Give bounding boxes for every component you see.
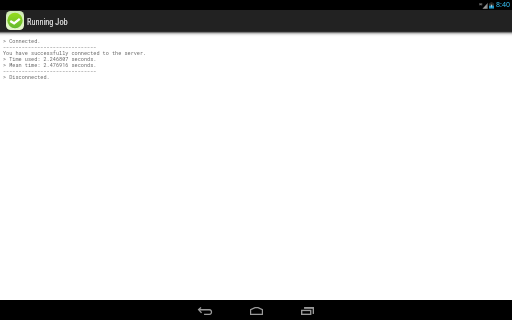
staticText: > Connected. ---------------------------… [3, 38, 147, 80]
button[interactable]: Back [194, 300, 216, 320]
button[interactable]: Home [245, 300, 267, 320]
button[interactable]: Recent apps [296, 300, 318, 320]
staticText: Running Job [27, 17, 68, 27]
staticText: 8:40 [496, 0, 510, 10]
